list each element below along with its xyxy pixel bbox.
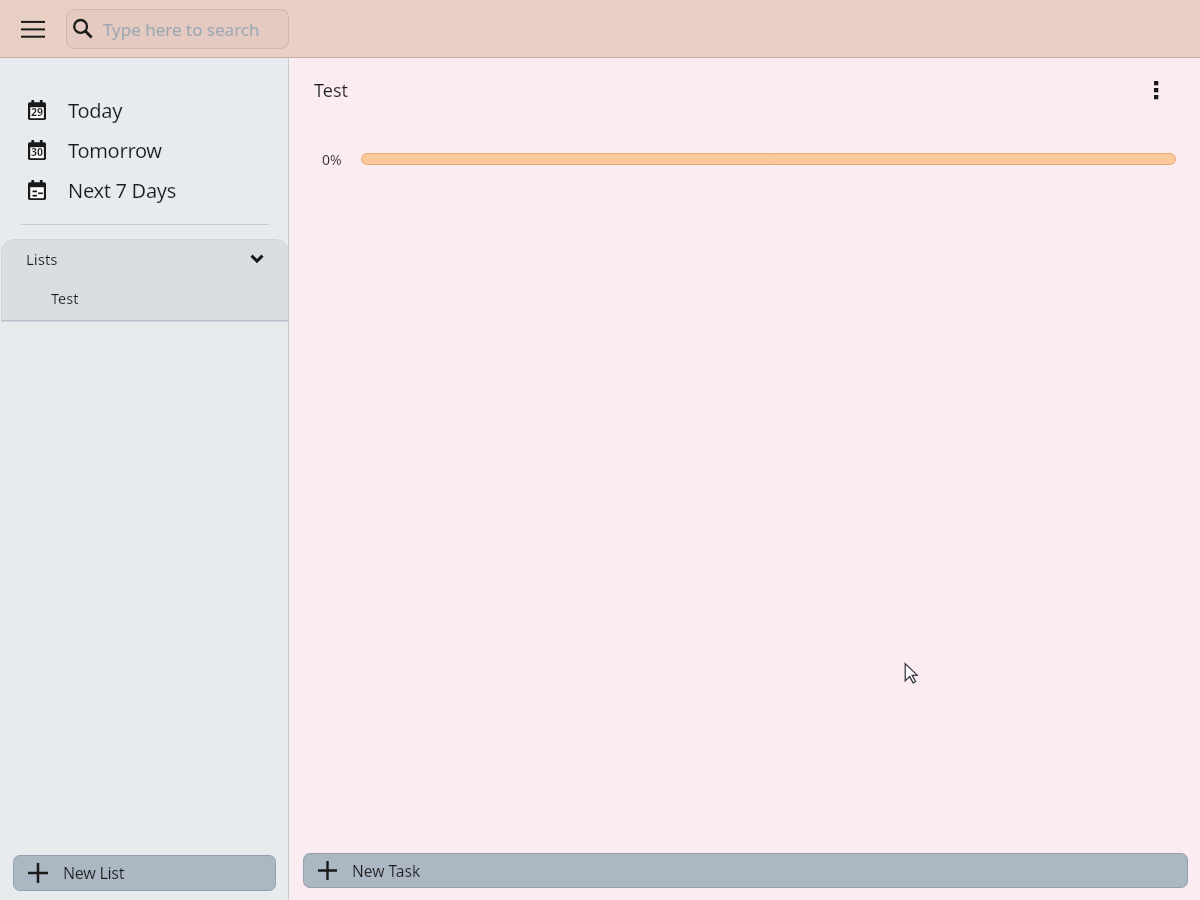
button[interactable]: Lists xyxy=(1,239,289,279)
button[interactable]: New List xyxy=(13,855,276,891)
staticText: 30 xyxy=(31,145,44,159)
staticText: Tomorrow xyxy=(68,137,162,164)
staticText: 0% xyxy=(322,150,361,169)
button[interactable]: Menu xyxy=(13,9,53,49)
staticText: 29 xyxy=(31,105,44,119)
staticText: New Task xyxy=(352,860,421,881)
button[interactable]: Next 7 Days xyxy=(0,170,289,210)
button[interactable]: New Task xyxy=(303,853,1188,888)
button[interactable]: Type here to search xyxy=(66,9,289,49)
staticText: Test xyxy=(51,288,79,308)
staticText: New List xyxy=(63,862,125,884)
staticText: Lists xyxy=(26,249,58,269)
staticText: Test xyxy=(314,78,349,103)
button[interactable]: 29 xyxy=(0,90,289,130)
staticText: Today xyxy=(68,97,123,124)
button[interactable]: Test xyxy=(1,279,289,320)
staticText: Next 7 Days xyxy=(68,177,177,204)
staticText: Type here to search xyxy=(103,18,260,41)
button[interactable]: 30 xyxy=(0,130,289,170)
button[interactable]: More options xyxy=(1142,76,1170,104)
